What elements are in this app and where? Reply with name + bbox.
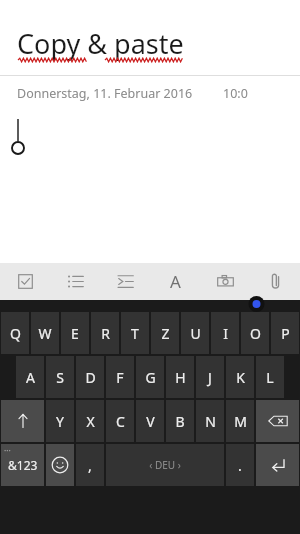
staticText: ••• xyxy=(4,447,11,455)
staticText: V xyxy=(146,412,155,431)
staticText: , xyxy=(88,456,92,475)
staticText: L xyxy=(266,368,274,387)
staticText: Z xyxy=(161,324,170,343)
staticText: O xyxy=(250,324,261,343)
button[interactable]: N xyxy=(196,400,224,442)
button[interactable]: B xyxy=(166,400,194,442)
button[interactable]: ‹ DEU › xyxy=(106,444,224,486)
button[interactable]: F xyxy=(106,356,134,398)
button[interactable]: Bullet list xyxy=(50,263,100,300)
button[interactable]: I xyxy=(211,312,239,354)
staticText: S xyxy=(56,368,64,387)
button[interactable]: T xyxy=(121,312,149,354)
staticText: D xyxy=(85,368,96,387)
staticText: N xyxy=(205,412,216,431)
button[interactable]: O xyxy=(241,312,269,354)
staticText: G xyxy=(145,368,156,387)
staticText: M xyxy=(234,412,247,431)
button[interactable]: Indent xyxy=(100,263,150,300)
button[interactable]: G xyxy=(136,356,164,398)
button[interactable]: R xyxy=(91,312,119,354)
button[interactable]: . xyxy=(226,444,254,486)
staticText: Q xyxy=(10,324,21,343)
staticText: I xyxy=(223,324,228,343)
staticText: X xyxy=(86,412,95,431)
staticText: Copy & paste xyxy=(17,25,184,62)
button[interactable]: Y xyxy=(46,400,74,442)
staticText: &123 xyxy=(8,457,38,473)
button[interactable]: W xyxy=(31,312,59,354)
button[interactable]: Attach file xyxy=(250,263,300,300)
button[interactable]: C xyxy=(106,400,134,442)
staticText: A xyxy=(26,368,35,387)
button[interactable]: Camera xyxy=(200,263,250,300)
staticText: . xyxy=(238,456,242,475)
button[interactable]: Backspace xyxy=(256,400,299,442)
button[interactable]: A xyxy=(16,356,44,398)
button[interactable]: Q xyxy=(1,312,29,354)
button[interactable]: &123 xyxy=(1,444,44,486)
button[interactable]: Font xyxy=(150,263,200,300)
button[interactable]: , xyxy=(76,444,104,486)
button[interactable]: X xyxy=(76,400,104,442)
staticText: A xyxy=(170,270,181,293)
staticText: Y xyxy=(56,412,64,431)
staticText: B xyxy=(175,412,185,431)
button[interactable]: L xyxy=(256,356,284,398)
button[interactable]: U xyxy=(181,312,209,354)
staticText: W xyxy=(38,324,52,343)
button[interactable]: M xyxy=(226,400,254,442)
button[interactable]: Emoji xyxy=(46,444,74,486)
button[interactable]: Enter xyxy=(256,444,299,486)
button[interactable]: J xyxy=(196,356,224,398)
staticText: H xyxy=(175,368,186,387)
staticText: 10:0 xyxy=(223,85,248,102)
button[interactable]: D xyxy=(76,356,104,398)
staticText: K xyxy=(236,368,245,387)
staticText: F xyxy=(116,368,124,387)
button[interactable]: K xyxy=(226,356,254,398)
staticText: R xyxy=(101,324,110,343)
staticText: C xyxy=(116,412,125,431)
button[interactable]: V xyxy=(136,400,164,442)
button[interactable]: Checkbox xyxy=(0,263,50,300)
staticText: ‹ DEU › xyxy=(149,458,181,472)
staticText: P xyxy=(281,324,290,343)
button[interactable]: H xyxy=(166,356,194,398)
button[interactable]: E xyxy=(61,312,89,354)
staticText: T xyxy=(131,324,139,343)
button[interactable]: Z xyxy=(151,312,179,354)
staticText: J xyxy=(208,368,212,387)
staticText: U xyxy=(190,324,201,343)
button[interactable]: P xyxy=(271,312,299,354)
button[interactable]: S xyxy=(46,356,74,398)
staticText: E xyxy=(71,324,79,343)
staticText: Donnerstag, 11. Februar 2016 xyxy=(17,85,193,102)
button[interactable]: Shift xyxy=(1,400,44,442)
